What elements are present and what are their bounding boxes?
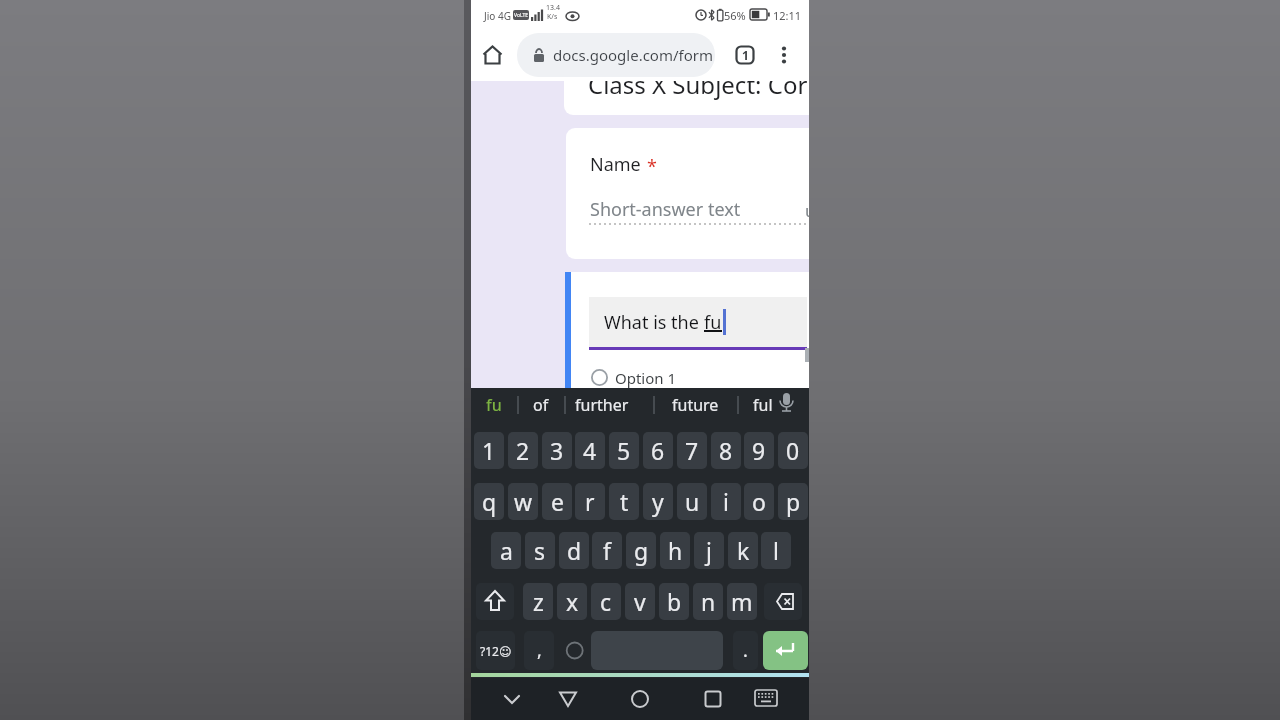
button[interactable] [764, 583, 802, 620]
button[interactable] [560, 631, 590, 670]
button[interactable]: k [728, 532, 758, 569]
button[interactable]: Name [566, 128, 809, 259]
button[interactable] [555, 686, 581, 712]
staticText: K/s [547, 12, 558, 22]
button[interactable]: 3 [542, 432, 572, 469]
button[interactable]: l [761, 532, 791, 569]
button[interactable]: What is the [589, 297, 807, 347]
staticText: , [537, 638, 542, 663]
button[interactable]: t [609, 483, 639, 520]
button[interactable]: z [523, 583, 553, 620]
button[interactable]: w [508, 483, 538, 520]
button[interactable]: h [660, 532, 690, 569]
button[interactable]: c [591, 583, 621, 620]
button[interactable] [754, 688, 778, 710]
staticText: fu [704, 310, 722, 335]
button[interactable]: q [474, 483, 504, 520]
button[interactable]: n [693, 583, 723, 620]
staticText: l [773, 535, 779, 566]
staticText: . [743, 638, 748, 663]
button[interactable] [482, 45, 503, 65]
button[interactable]: v [625, 583, 655, 620]
staticText: * [647, 154, 657, 179]
button[interactable]: f [592, 532, 622, 569]
staticText: Jio 4G [484, 9, 511, 23]
button[interactable]: fu [486, 394, 502, 416]
staticText: r [585, 486, 595, 517]
staticText: b [667, 586, 682, 617]
staticText: v [634, 586, 646, 617]
staticText: w [514, 486, 533, 517]
button[interactable]: 7 [677, 432, 707, 469]
button[interactable]: d [559, 532, 589, 569]
button[interactable]: g [626, 532, 656, 569]
staticText: 9 [752, 435, 766, 466]
staticText: n [701, 586, 716, 617]
staticText: z [533, 586, 544, 617]
button[interactable]: s [525, 532, 555, 569]
staticText: 6 [651, 435, 665, 466]
button[interactable]: 1 [736, 46, 754, 64]
button[interactable]: e [542, 483, 572, 520]
button[interactable]: i [711, 483, 741, 520]
button[interactable]: further [575, 394, 629, 416]
staticText: a [500, 535, 513, 566]
button[interactable]: x [557, 583, 587, 620]
button[interactable]: 0 [778, 432, 808, 469]
button[interactable]: b [659, 583, 689, 620]
staticText: 0 [786, 435, 800, 466]
button[interactable]: 5 [609, 432, 639, 469]
staticText: 12:11 [773, 8, 802, 23]
staticText: y [652, 486, 664, 517]
staticText: q [482, 486, 497, 517]
button[interactable] [627, 686, 653, 712]
staticText: o [752, 486, 766, 517]
button[interactable]: ?12☺ [476, 631, 515, 670]
button[interactable]: , [524, 631, 554, 670]
button[interactable]: 1 [474, 432, 504, 469]
staticText: 2 [516, 435, 530, 466]
button[interactable]: m [727, 583, 757, 620]
button[interactable] [777, 46, 791, 64]
staticText: h [668, 535, 683, 566]
staticText: 56% [724, 8, 746, 23]
button[interactable] [476, 583, 514, 620]
button[interactable]: j [694, 532, 724, 569]
button[interactable]: o [744, 483, 774, 520]
staticText: x [566, 586, 579, 617]
button[interactable]: p [778, 483, 808, 520]
staticText: 4 [583, 435, 597, 466]
button[interactable]: 6 [643, 432, 673, 469]
button[interactable]: 4 [575, 432, 605, 469]
staticText: 13.4 [546, 3, 560, 13]
button[interactable]: docs.google.com/form [517, 33, 715, 77]
staticText: j [706, 535, 712, 566]
button[interactable]: r [575, 483, 605, 520]
staticText: i [723, 486, 729, 517]
button[interactable]: of [533, 394, 549, 416]
button[interactable]: future [672, 394, 719, 416]
button[interactable]: u [677, 483, 707, 520]
staticText: 5 [617, 435, 631, 466]
staticText: 7 [685, 435, 699, 466]
button[interactable]: ful [753, 394, 773, 416]
staticText: Class X Subject: Cor [588, 81, 808, 101]
staticText: VoLTE [514, 12, 529, 19]
button[interactable]: . [733, 631, 758, 670]
button[interactable]: 2 [508, 432, 538, 469]
button[interactable] [499, 686, 525, 712]
button[interactable]: 8 [711, 432, 741, 469]
button[interactable]: a [491, 532, 521, 569]
staticText: s [534, 535, 546, 566]
button[interactable]: y [643, 483, 673, 520]
staticText: Name [590, 152, 641, 177]
button[interactable]: 9 [744, 432, 774, 469]
staticText: d [567, 535, 582, 566]
staticText: m [731, 586, 753, 617]
button[interactable] [700, 686, 726, 712]
button[interactable] [763, 631, 808, 670]
staticText: c [600, 586, 612, 617]
staticText: 1 [482, 435, 496, 466]
staticText: u [685, 486, 700, 517]
